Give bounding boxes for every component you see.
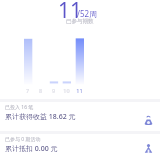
other: 抵扣详情 xyxy=(144,144,153,153)
staticText: 累计获得收益 18.62 元 xyxy=(5,112,76,122)
staticText: 7 xyxy=(21,87,34,94)
staticText: 10 xyxy=(60,87,73,94)
staticText: 已参与期数 xyxy=(66,18,94,25)
staticText: 9 xyxy=(47,87,60,94)
staticText: 已参与 0 期活动 xyxy=(5,136,41,143)
staticText: 8 xyxy=(34,87,47,94)
staticText: 已投入 16 笔 xyxy=(5,104,34,111)
other: 收益详情 xyxy=(144,116,153,125)
staticText: 11 xyxy=(58,0,83,25)
button[interactable]: 已投入 16 笔 xyxy=(0,99,160,128)
button[interactable]: 已参与 0 期活动 xyxy=(0,131,160,160)
staticText: 11 xyxy=(73,87,86,94)
staticText: 累计抵扣 0.00 元 xyxy=(5,144,58,154)
staticText: /52周 xyxy=(77,8,98,19)
